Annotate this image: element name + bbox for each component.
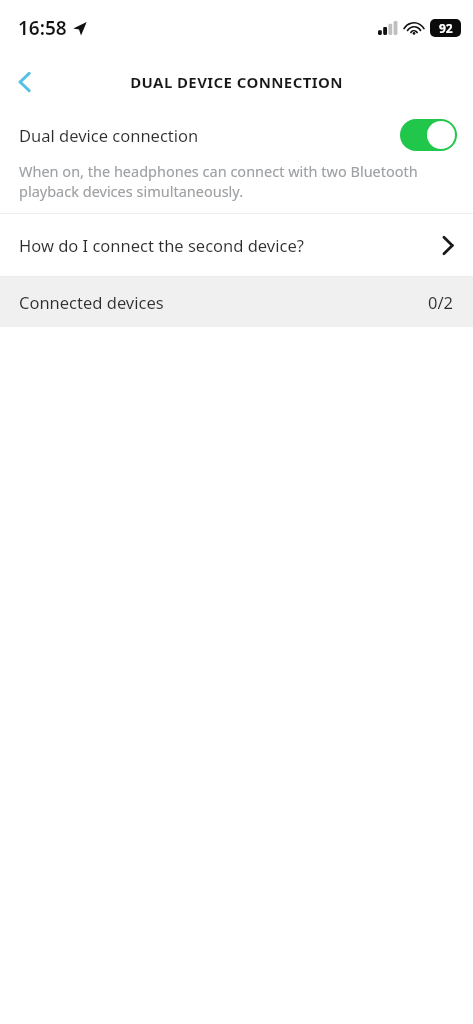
staticText: When on, the headphones can connect with… — [19, 161, 443, 202]
button[interactable]: Back — [0, 58, 48, 106]
button[interactable]: How do I connect the second device? — [0, 214, 473, 276]
button[interactable]: Connected devices — [0, 277, 473, 327]
staticText: Dual device connection — [19, 124, 400, 146]
staticText: How do I connect the second device? — [19, 234, 442, 256]
staticText: 0/2 — [428, 291, 454, 313]
staticText: 16:58 — [18, 15, 67, 41]
staticText: DUAL DEVICE CONNECTION — [130, 72, 343, 92]
staticText: Connected devices — [19, 291, 428, 313]
staticText: 92 — [439, 20, 453, 36]
button[interactable]: Dual device connection toggle, on — [400, 119, 457, 151]
button[interactable]: Dual device connection — [0, 108, 473, 161]
